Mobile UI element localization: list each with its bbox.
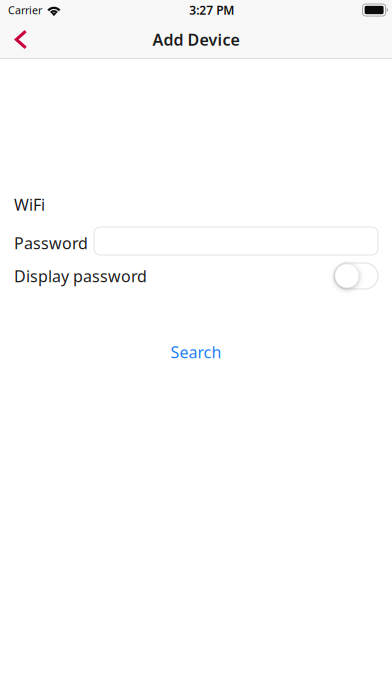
button[interactable]: Search bbox=[0, 343, 392, 361]
button[interactable]: Back bbox=[0, 20, 42, 59]
staticText: 3:27 PM bbox=[189, 2, 234, 18]
button[interactable]: Display password bbox=[334, 263, 378, 289]
staticText: Add Device bbox=[152, 29, 239, 50]
staticText: Password bbox=[14, 232, 88, 254]
staticText: Search bbox=[170, 341, 221, 363]
staticText: WiFi bbox=[14, 194, 45, 215]
staticText: Carrier bbox=[8, 3, 42, 17]
staticText: Display password bbox=[14, 265, 147, 287]
